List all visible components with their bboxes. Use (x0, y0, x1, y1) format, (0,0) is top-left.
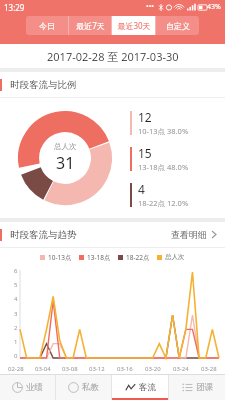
staticText: 自定义 (166, 21, 190, 31)
staticText: 总人次 (165, 253, 185, 261)
staticText: 今日 (39, 21, 55, 31)
button[interactable]: 最近7天 (69, 16, 111, 35)
button[interactable]: 今日 (26, 16, 68, 35)
staticText: 时段客流与趋势 (10, 229, 77, 241)
staticText: 02-28 (8, 365, 24, 373)
staticText: 12 (138, 109, 152, 125)
staticText: 03-08 (62, 365, 78, 373)
button[interactable]: 自定义 (156, 16, 199, 35)
staticText: 客流 (139, 382, 156, 393)
staticText: 15 (138, 145, 152, 161)
staticText: 13-18点 (87, 253, 111, 262)
staticText: 43% (207, 2, 221, 12)
staticText: 总人次 (54, 142, 77, 151)
staticText: 最近30天 (117, 20, 151, 31)
button[interactable]: 查看明细 (171, 229, 225, 240)
staticText: 31 (56, 152, 75, 174)
staticText: 10-13点 (48, 253, 72, 262)
staticText: 18-22点 12.0% (138, 198, 189, 208)
staticText: 03-24 (173, 365, 189, 373)
staticText: 3 (14, 310, 18, 318)
staticText: 2017-02-28 至 2017-03-30 (47, 49, 179, 64)
button[interactable]: 业绩 (0, 375, 55, 400)
staticText: 03-28 (201, 365, 217, 373)
staticText: 03-12 (89, 365, 105, 373)
staticText: 1 (14, 338, 18, 346)
staticText: 10-13点 38.0% (138, 126, 189, 136)
staticText: 查看明细 (171, 229, 207, 240)
button[interactable]: 私教 (56, 375, 111, 400)
staticText: 私教 (82, 382, 99, 393)
staticText: 6 (14, 267, 18, 275)
staticText: 03-20 (145, 365, 161, 373)
staticText: 业绩 (26, 382, 43, 393)
staticText: 2 (14, 324, 18, 332)
staticText: 13-18点 48.0% (138, 162, 189, 172)
staticText: 团课 (196, 382, 213, 393)
button[interactable]: 团课 (169, 375, 225, 400)
staticText: ••• (146, 2, 154, 12)
staticText: 4 (138, 181, 145, 197)
staticText: 最近7天 (76, 20, 105, 31)
staticText: 5 (14, 281, 18, 289)
staticText: 4 (14, 295, 18, 303)
staticText: 13:29 (4, 2, 25, 13)
staticText: 18-22点 (126, 253, 150, 262)
button[interactable]: 客流 (112, 375, 168, 400)
staticText: 03-04 (35, 365, 51, 373)
button[interactable]: 最近30天 (112, 16, 155, 35)
staticText: 时段客流与比例 (10, 79, 77, 91)
staticText: 03-16 (117, 365, 133, 373)
staticText: 0 (14, 352, 18, 360)
